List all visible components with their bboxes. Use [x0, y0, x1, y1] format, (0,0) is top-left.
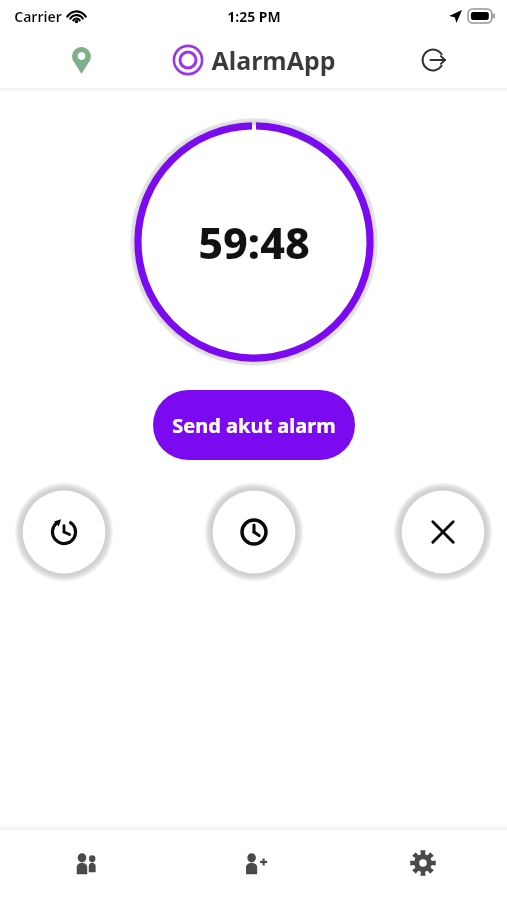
button[interactable]: Set time: [210, 488, 298, 576]
button[interactable]: Restart timer: [20, 488, 108, 576]
staticText: 59:48: [198, 213, 310, 272]
button[interactable]: Log out: [411, 38, 455, 82]
button[interactable]: Settings: [338, 830, 507, 900]
button[interactable]: Send akut alarm: [153, 390, 355, 460]
button[interactable]: Add contact: [169, 830, 338, 900]
button[interactable]: Location: [60, 39, 102, 81]
staticText: 1:25 PM: [227, 7, 281, 26]
button[interactable]: AlarmApp: [172, 43, 336, 77]
button[interactable]: 59:48: [130, 118, 378, 366]
button[interactable]: Cancel: [399, 488, 487, 576]
staticText: AlarmApp: [211, 43, 336, 77]
staticText: Carrier: [14, 7, 62, 26]
button[interactable]: Contacts: [0, 830, 169, 900]
staticText: Send akut alarm: [172, 412, 336, 439]
